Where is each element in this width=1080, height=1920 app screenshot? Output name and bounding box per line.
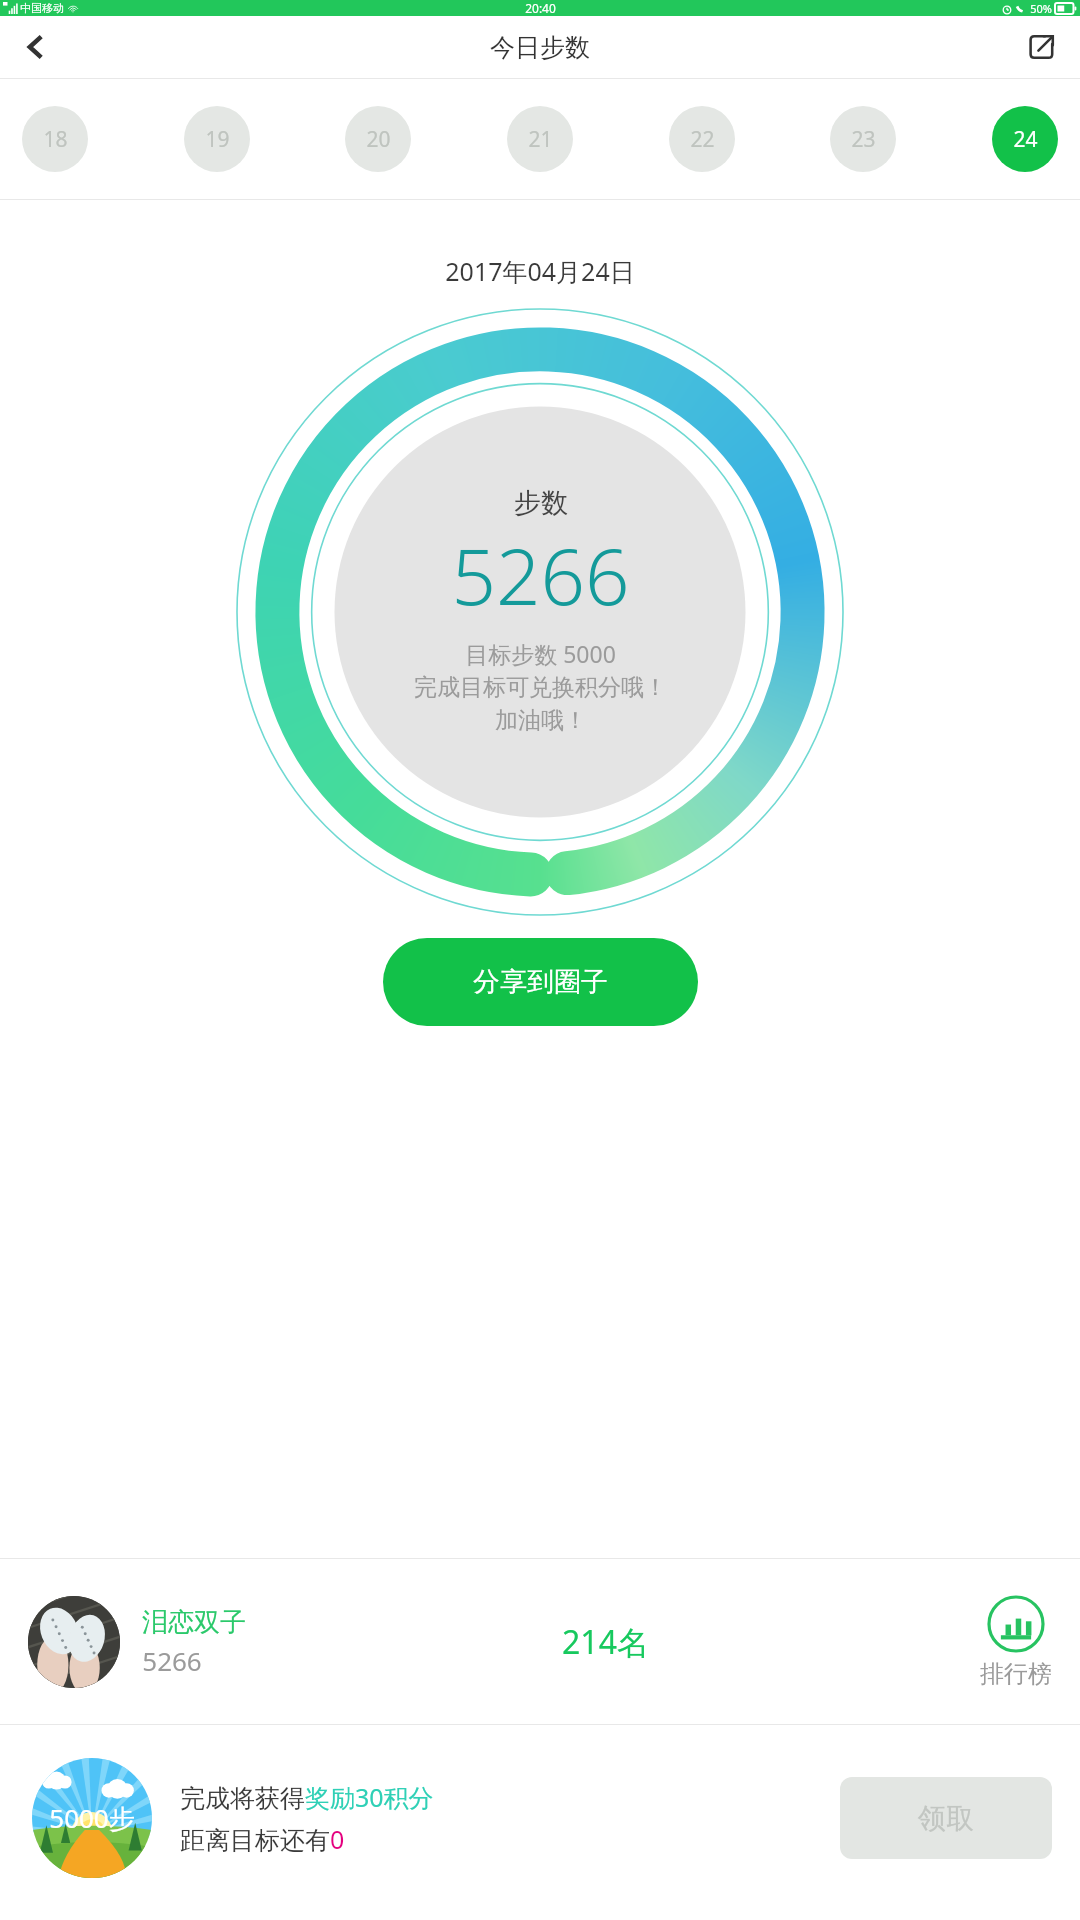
button[interactable]: 24: [992, 106, 1058, 172]
staticText: 18: [43, 125, 68, 154]
staticText: 5266: [142, 1643, 202, 1678]
staticText: 2017年04月24日: [445, 254, 635, 288]
staticText: 22: [690, 125, 715, 154]
staticText: 23: [851, 125, 876, 154]
staticText: 距离目标还有0: [180, 1822, 345, 1856]
staticText: 20:40: [525, 0, 556, 16]
staticText: 19: [205, 125, 230, 154]
button[interactable]: 领取: [840, 1777, 1052, 1859]
button[interactable]: 泪恋双子: [0, 1559, 1080, 1724]
staticText: 目标步数 5000: [465, 638, 616, 669]
staticText: 泪恋双子: [142, 1606, 246, 1639]
button[interactable]: 18: [22, 106, 88, 172]
staticText: 20: [366, 125, 391, 154]
staticText: 5000步: [49, 1800, 135, 1836]
button[interactable]: 21: [507, 106, 573, 172]
button[interactable]: 排行榜: [980, 1595, 1052, 1689]
staticText: 步数: [514, 486, 568, 520]
staticText: 24: [1013, 125, 1038, 154]
staticText: 214名: [562, 1620, 649, 1664]
staticText: 加油哦！: [495, 706, 587, 735]
button[interactable]: 22: [669, 106, 735, 172]
staticText: 分享到圈子: [473, 965, 608, 999]
button[interactable]: 分享到圈子: [383, 938, 698, 1026]
button[interactable]: Back: [8, 19, 64, 75]
button[interactable]: 20: [345, 106, 411, 172]
staticText: 5266: [451, 522, 630, 628]
staticText: 完成将获得奖励30积分: [180, 1780, 434, 1814]
button[interactable]: Share: [1014, 19, 1070, 75]
button[interactable]: 19: [184, 106, 250, 172]
staticText: 今日步数: [490, 32, 590, 63]
staticText: 21: [528, 125, 553, 154]
staticText: 领取: [918, 1801, 974, 1836]
staticText: 完成目标可兑换积分哦！: [414, 673, 667, 702]
button[interactable]: 23: [830, 106, 896, 172]
staticText: 中国移动: [20, 1, 64, 15]
staticText: 50%: [1030, 1, 1052, 16]
staticText: 排行榜: [980, 1659, 1052, 1689]
